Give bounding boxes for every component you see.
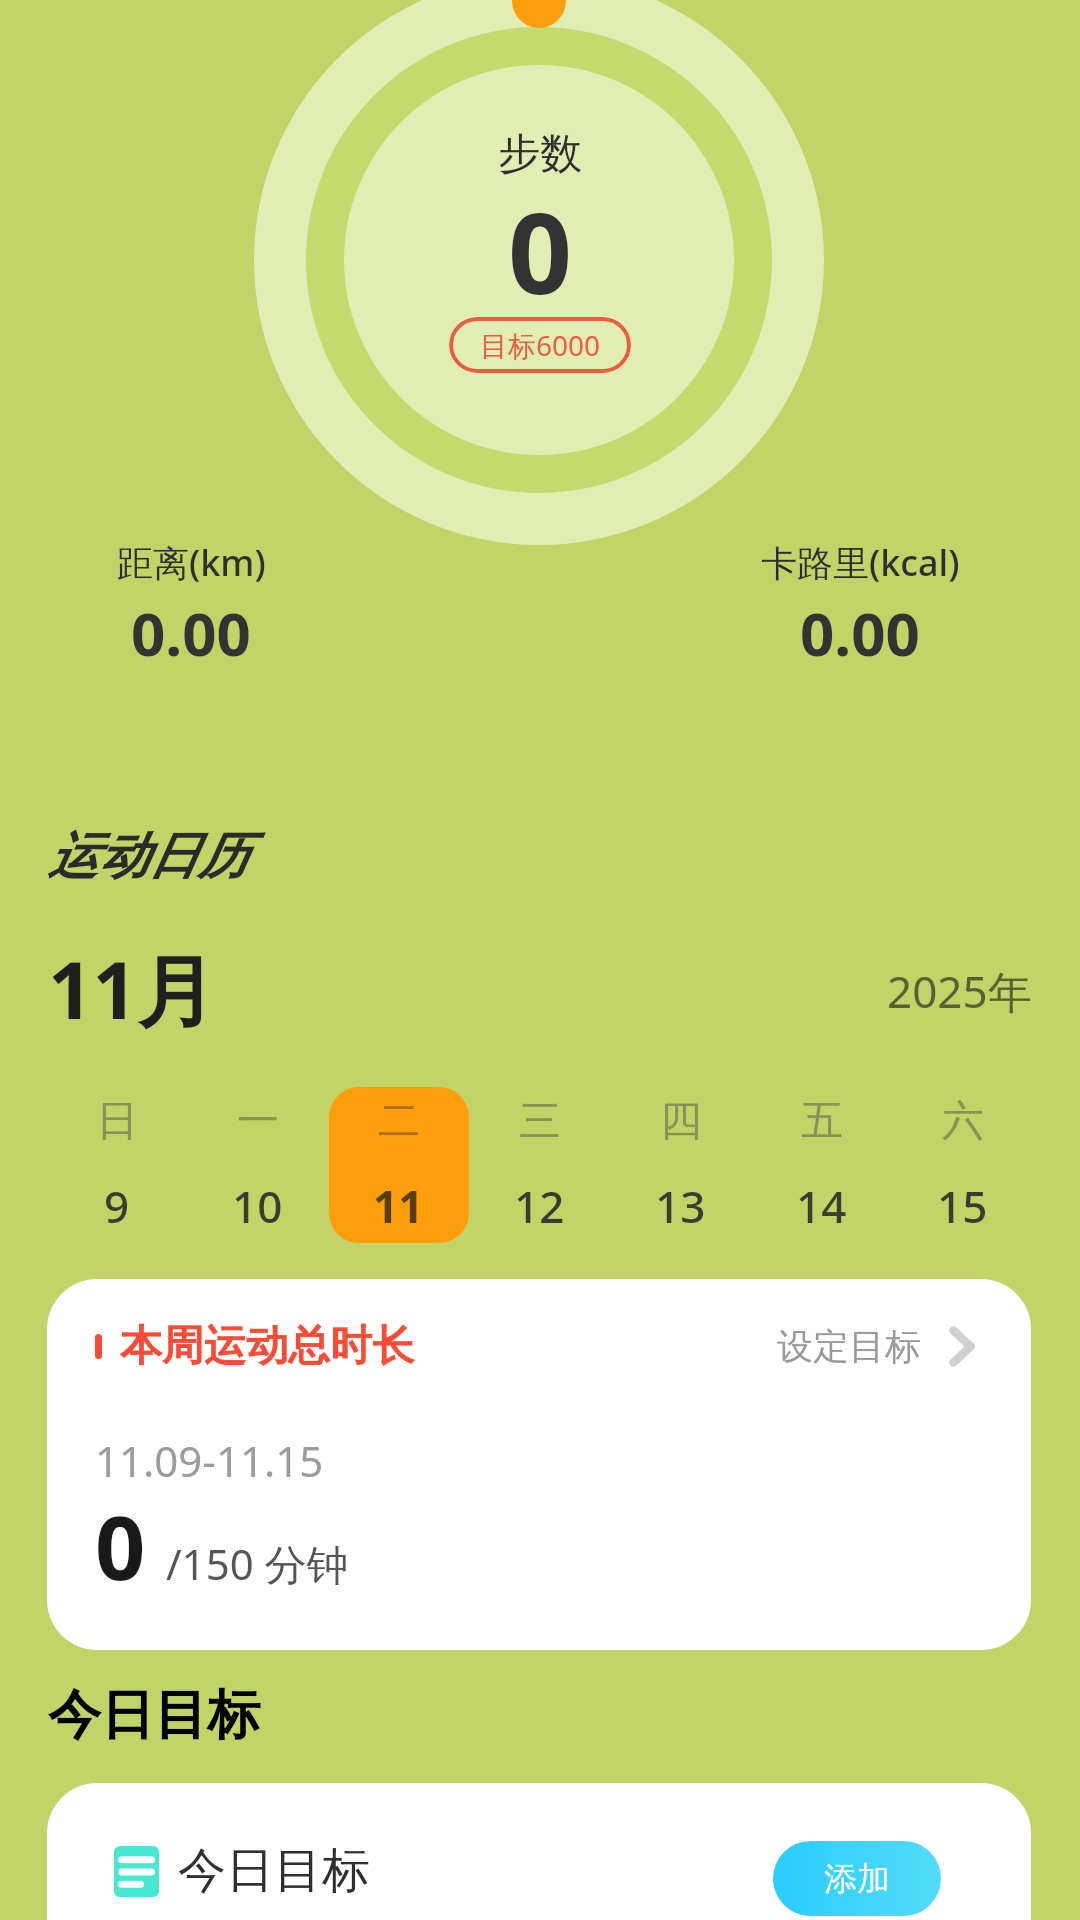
staticText: 0 [95,1486,146,1606]
staticText: 10 [232,1176,283,1236]
staticText: 一 [237,1095,279,1148]
button[interactable]: 今日目标 [47,1783,1031,1920]
button[interactable]: 三 [469,1086,610,1244]
button[interactable]: 四 [610,1086,751,1244]
staticText: 距离(km) [117,538,266,587]
staticText: 今日目标 [178,1841,370,1901]
button[interactable]: 卡路里(kcal) [640,538,1080,674]
staticText: 2025年 [887,961,1032,1021]
button[interactable]: 五 [751,1086,892,1244]
button[interactable]: 一 [187,1086,328,1244]
button[interactable]: 日 [47,1086,187,1244]
staticText: 运动日历 [48,825,248,888]
staticText: 11月 [48,936,216,1043]
staticText: /150 分钟 [166,1535,349,1592]
staticText: 0.00 [131,592,251,674]
button[interactable]: 添加 [773,1841,941,1916]
staticText: 目标6000 [480,326,601,364]
staticText: 11 [373,1176,424,1236]
staticText: 步数 [498,128,582,181]
staticText: 0.00 [800,592,920,674]
staticText: 设定目标 [777,1324,921,1369]
staticText: 12 [514,1176,565,1236]
staticText: 六 [942,1095,984,1148]
other: 设定目标 [949,1326,975,1367]
staticText: 13 [655,1176,706,1236]
staticText: 日 [96,1095,138,1148]
other: 今日目标 [114,1846,159,1897]
staticText: 三 [519,1095,561,1148]
staticText: 今日目标 [48,1682,260,1749]
button[interactable]: 距离(km) [0,538,382,674]
staticText: 0 [508,174,573,327]
button[interactable]: 设定目标 [777,1324,975,1369]
staticText: 9 [104,1176,130,1236]
button[interactable]: 六 [892,1086,1033,1244]
staticText: 卡路里(kcal) [761,538,960,587]
staticText: 二 [378,1095,420,1148]
staticText: 11.09-11.15 [95,1432,324,1489]
button[interactable]: 目标6000 [449,317,631,373]
staticText: 添加 [824,1858,890,1900]
staticText: 五 [801,1095,843,1148]
button[interactable]: 二 [328,1086,469,1244]
staticText: 四 [660,1095,702,1148]
staticText: 15 [937,1176,988,1236]
button[interactable]: 本周运动总时长 [47,1279,1031,1650]
staticText: 本周运动总时长 [120,1320,414,1373]
staticText: 14 [796,1176,847,1236]
